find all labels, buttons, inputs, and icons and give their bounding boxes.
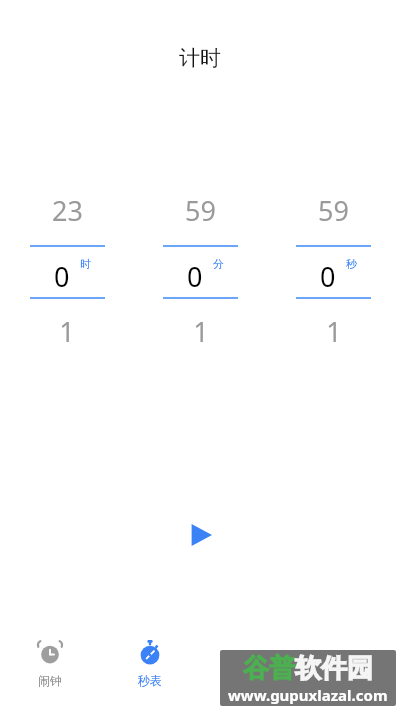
staticText: 0 [54,258,70,295]
staticText: 1 [193,313,209,350]
staticText: 时 [80,257,91,271]
staticText: 软件园 [295,652,373,685]
staticText: www.gupuxlazal.com [228,685,388,705]
button[interactable]: 23 [0,180,134,244]
staticText: 0 [320,258,336,295]
staticText: 1 [59,313,75,350]
button[interactable]: 59 [134,180,267,244]
staticText: 计时 [179,45,221,71]
staticText: 秒表 [138,673,162,688]
staticText: 23 [52,192,83,229]
button[interactable]: Start [163,498,237,572]
button[interactable]: 秒表 [100,630,200,711]
button[interactable]: 闹钟 [0,630,100,711]
staticText: 1 [326,313,342,350]
staticText: 0 [187,258,203,295]
button[interactable]: 59 [267,180,400,244]
staticText: 59 [318,192,349,229]
staticText: 谷普 [243,652,295,685]
staticText: 59 [185,192,216,229]
staticText: 闹钟 [38,673,62,688]
staticText: 秒 [346,257,357,271]
staticText: 分 [213,257,224,271]
